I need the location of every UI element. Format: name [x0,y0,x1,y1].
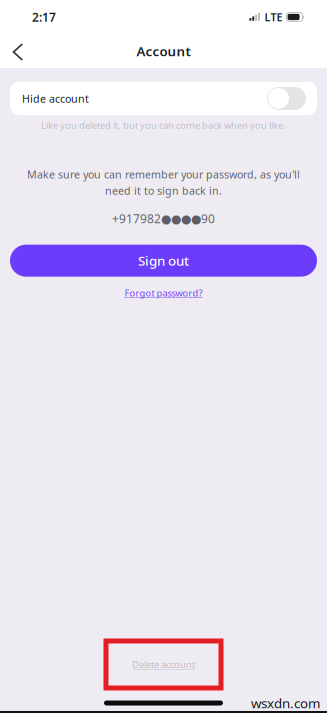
staticText: Delete account [132,658,195,671]
staticText: Hide account [22,91,89,106]
button[interactable]: Forgot password? [116,282,210,304]
staticText: LTE [264,10,282,24]
staticText: Forgot password? [124,287,202,299]
button[interactable]: Sign out [10,245,317,277]
staticText: Sign out [138,252,189,269]
staticText: 2:17 [32,9,56,25]
staticText: Make sure you can remember your password… [27,167,300,182]
button[interactable]: Hide account [10,82,317,115]
staticText: wsxdn.com [251,694,320,712]
button[interactable]: Delete account [106,641,221,688]
button[interactable]: Back [1,34,35,68]
staticText: +917982●●●●90 [112,211,215,227]
staticText: Like you deleted it, but you can come ba… [41,119,286,131]
staticText: need it to sign back in. [105,184,222,198]
staticText: Account [136,42,190,60]
